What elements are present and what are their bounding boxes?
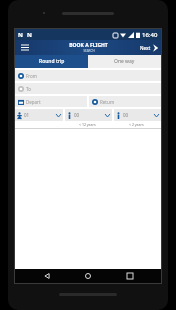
staticText: Depart [26,99,41,105]
button[interactable]: Next [140,43,159,53]
staticText: 16:40 [142,31,158,39]
button[interactable]: 01 [15,109,63,121]
staticText: To [26,86,31,92]
staticText: Round trip [39,58,65,65]
staticText: 00 [74,112,80,118]
button[interactable]: Depart [15,96,87,107]
staticText: BOOK A FLIGHT [69,42,108,49]
staticText: Next [140,45,151,51]
staticText: N [18,31,23,39]
button[interactable]: 00 [114,109,161,121]
button[interactable]: Recents [120,269,140,283]
button[interactable]: Return [89,96,161,107]
staticText: N [27,31,32,39]
staticText: SEARCH [83,49,95,53]
staticText: 00 [123,112,129,118]
button[interactable]: Menu [18,41,31,54]
button[interactable]: Back [37,269,57,283]
staticText: < 2 years [129,122,144,127]
staticText: Return [100,99,115,105]
staticText: From [26,73,38,79]
button[interactable]: Home [78,269,98,283]
button[interactable]: To [15,83,161,94]
staticText: < 12 years [79,122,96,127]
staticText: One way [114,58,135,65]
button[interactable]: 00 [65,109,112,121]
button[interactable]: One way [88,55,161,68]
button[interactable]: Round trip [15,55,88,68]
button[interactable]: From [15,70,161,81]
staticText: 01 [24,112,30,118]
